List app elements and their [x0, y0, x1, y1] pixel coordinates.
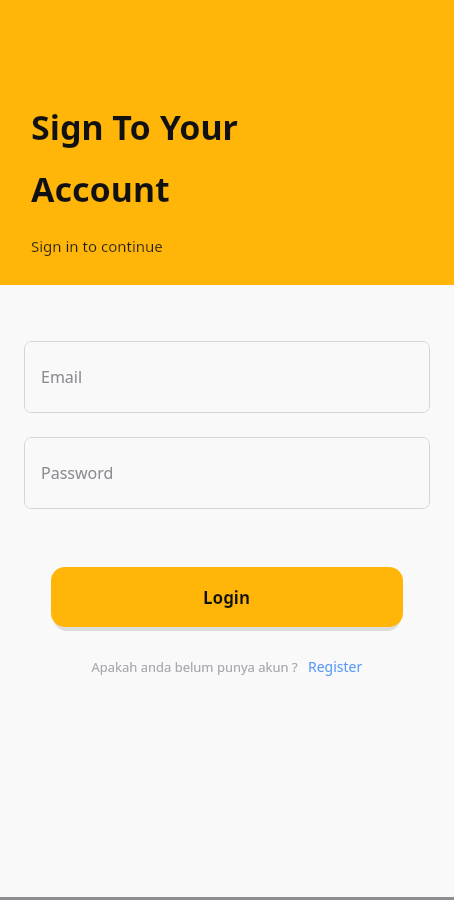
staticText: Login: [203, 586, 251, 609]
button[interactable]: Register: [308, 657, 363, 676]
staticText: Sign To Your: [31, 104, 238, 150]
staticText: Apakah anda belum punya akun ?: [91, 658, 298, 676]
button[interactable]: Login: [51, 567, 403, 627]
button[interactable]: Password: [24, 437, 430, 509]
staticText: Password: [41, 462, 114, 484]
staticText: Account: [31, 166, 170, 212]
button[interactable]: Email: [24, 341, 430, 413]
staticText: Sign in to continue: [31, 236, 163, 256]
staticText: Email: [41, 366, 83, 388]
staticText: Register: [308, 657, 363, 676]
